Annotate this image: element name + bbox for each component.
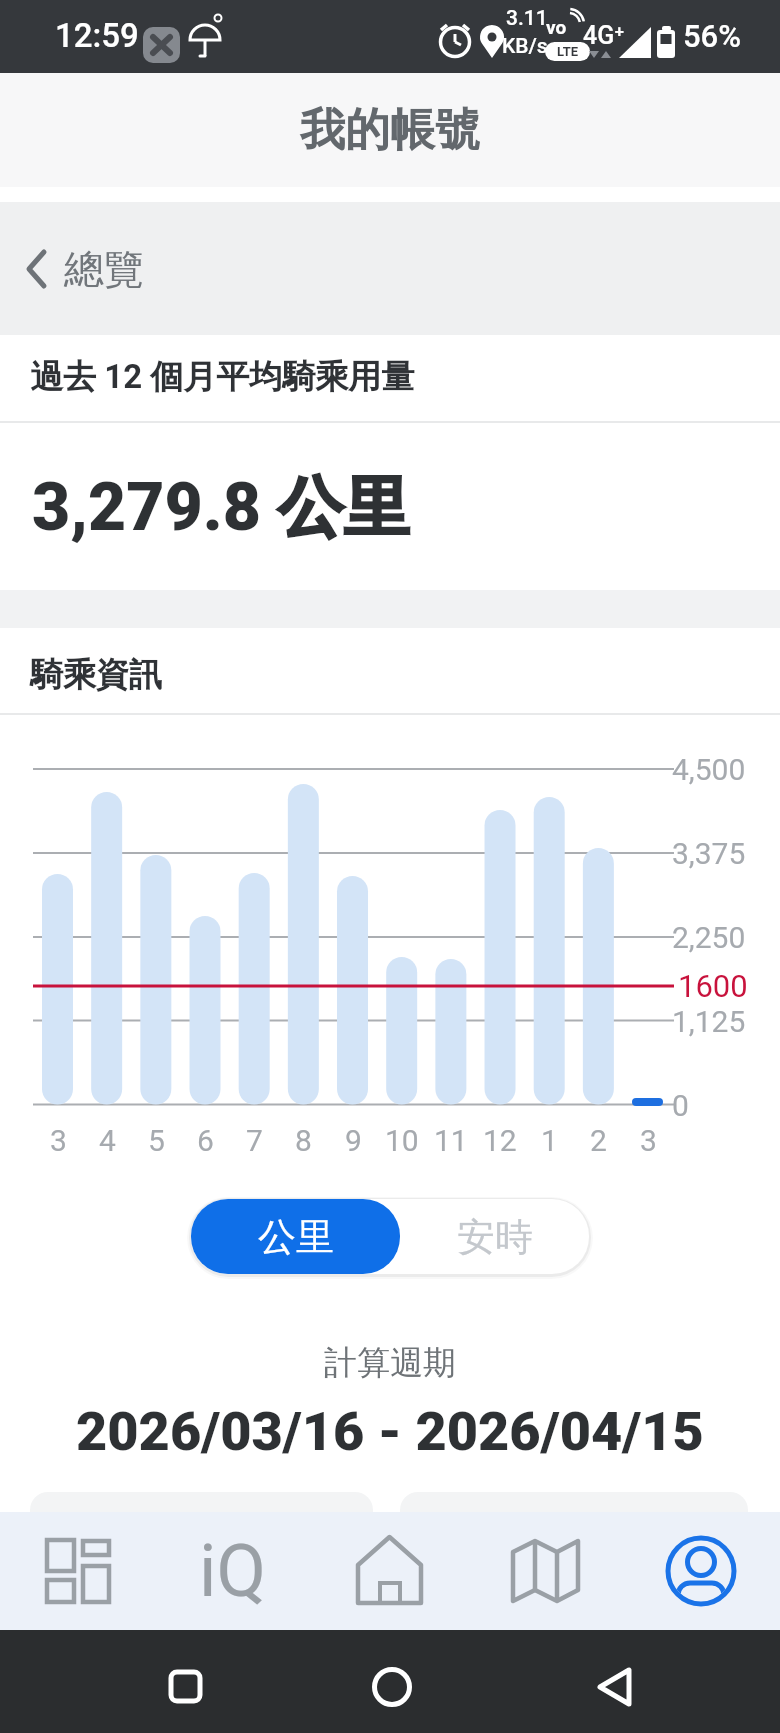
button[interactable] [357, 1662, 427, 1712]
staticText: 12:59 [55, 16, 139, 55]
staticText: KB/s [502, 34, 548, 59]
staticText: 2 [590, 1123, 607, 1158]
button[interactable]: iQ [178, 1512, 288, 1630]
staticText: 12 [483, 1123, 517, 1158]
button[interactable] [335, 1510, 445, 1608]
staticText: 3 [640, 1123, 657, 1158]
button[interactable] [24, 1522, 134, 1620]
staticText: 4,500 [672, 752, 746, 787]
staticText: 56% [683, 18, 742, 54]
staticText: 6 [197, 1123, 214, 1158]
staticText: 3,375 [672, 836, 746, 871]
staticText: 騎乘資訊 [30, 654, 162, 696]
staticText: 1600 [678, 968, 748, 1004]
staticText: 10 [385, 1123, 419, 1158]
staticText: 0 [672, 1088, 689, 1123]
button[interactable] [490, 1510, 600, 1608]
staticText: 8 [295, 1123, 312, 1158]
staticText: 3 [50, 1123, 67, 1158]
staticText: 1,125 [672, 1004, 746, 1039]
button[interactable] [580, 1662, 650, 1712]
button[interactable]: 安時 [400, 1199, 589, 1274]
button[interactable] [646, 1522, 756, 1620]
staticText: 安時 [457, 1213, 533, 1261]
button[interactable]: 公里 [191, 1199, 400, 1274]
staticText: 9 [345, 1123, 362, 1158]
staticText: 5 [148, 1123, 165, 1158]
staticText: 2026/03/16 - 2026/04/15 [76, 1400, 704, 1463]
staticText: 3,279.8 公里 [32, 466, 410, 549]
staticText: 總覽 [64, 244, 144, 294]
staticText: 公里 [258, 1213, 334, 1261]
staticText: 我的帳號 [300, 102, 480, 159]
staticText: 4 [99, 1123, 116, 1158]
staticText: 7 [246, 1123, 263, 1158]
button[interactable]: 總覽 [0, 202, 780, 335]
staticText: 4G⁺ [583, 21, 625, 50]
staticText: 1 [541, 1123, 558, 1158]
staticText: LTE [557, 44, 579, 59]
staticText: 2,250 [672, 920, 746, 955]
staticText: 3.11 [506, 6, 548, 31]
staticText: 11 [434, 1123, 468, 1158]
staticText: 計算週期 [324, 1342, 456, 1384]
staticText: vo [546, 16, 567, 38]
button[interactable] [150, 1662, 220, 1712]
staticText: iQ [199, 1529, 267, 1613]
staticText: 過去 12 個月平均騎乘用量 [30, 356, 415, 398]
